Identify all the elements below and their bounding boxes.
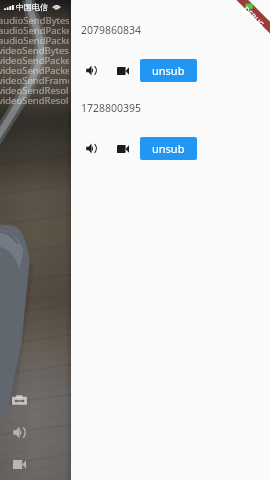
button[interactable]: Mute video (111, 59, 134, 82)
staticText: audioSendBytes: audioSendPackets audioSe… (0, 14, 69, 107)
button[interactable]: Toggle camera (10, 455, 28, 473)
button[interactable]: unsub (140, 137, 197, 160)
button[interactable]: Mute audio (80, 137, 103, 160)
staticText: 1728800395 (81, 101, 142, 115)
button[interactable]: Mute microphone (10, 423, 28, 441)
staticText: DEBUG (241, 4, 267, 30)
staticText: 中国电信 (16, 2, 48, 12)
button[interactable]: Switch camera (10, 391, 28, 409)
button[interactable]: Mute audio (80, 59, 103, 82)
button[interactable]: Mute video (111, 137, 134, 160)
staticText: 2079860834 (81, 23, 142, 37)
button[interactable]: unsub (140, 59, 197, 82)
staticText: unsub (152, 63, 185, 78)
staticText: unsub (152, 141, 185, 156)
